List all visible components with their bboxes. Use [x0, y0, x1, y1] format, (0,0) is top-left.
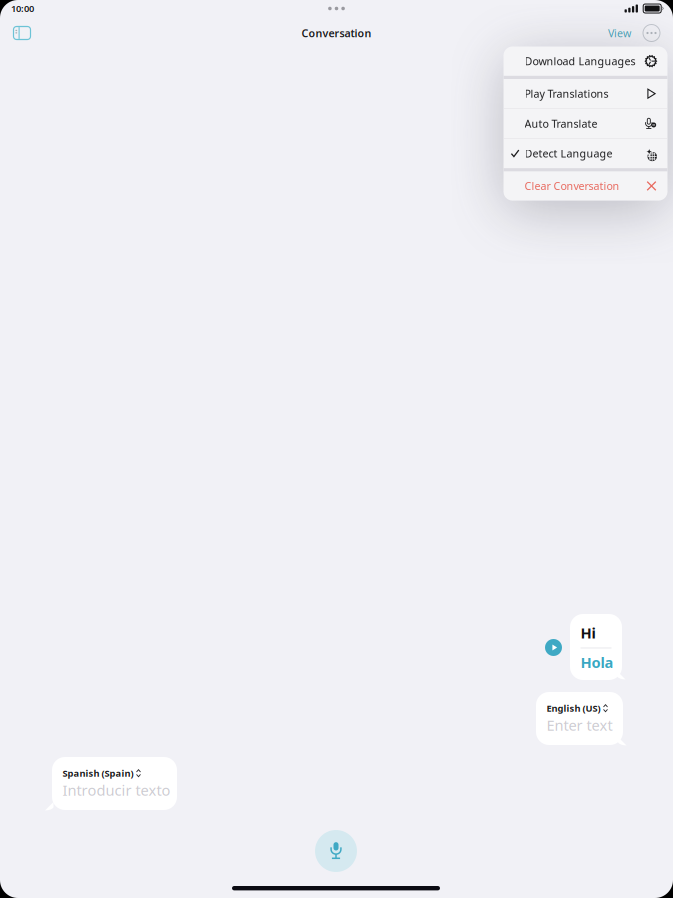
button[interactable]: Download Languages [503, 46, 667, 76]
staticText: Auto Translate [524, 116, 597, 131]
staticText: Hi [580, 623, 595, 642]
staticText: Conversation [301, 26, 371, 40]
button[interactable]: View [603, 21, 636, 45]
staticText: Clear Conversation [524, 179, 619, 193]
staticText: 10:00 [11, 2, 34, 15]
button[interactable]: More options [636, 21, 667, 45]
button[interactable]: Toggle Sidebar [6, 21, 38, 45]
button[interactable]: Clear Conversation [503, 171, 667, 201]
staticText: English (US) [546, 702, 600, 714]
staticText: View [608, 26, 631, 40]
staticText: Download Languages [524, 54, 635, 68]
staticText: Play Translations [524, 87, 608, 101]
button[interactable]: Start listening [315, 830, 357, 872]
button[interactable]: Auto Translate [503, 109, 667, 138]
staticText: Introducir texto [62, 780, 170, 800]
button[interactable]: Detect Language [503, 139, 667, 168]
staticText: Detect Language [524, 146, 612, 161]
staticText: Spanish (Spain) [62, 767, 133, 779]
staticText: Hola [580, 652, 613, 672]
staticText: Enter text [546, 715, 612, 735]
button[interactable]: Play Translations [503, 79, 667, 108]
